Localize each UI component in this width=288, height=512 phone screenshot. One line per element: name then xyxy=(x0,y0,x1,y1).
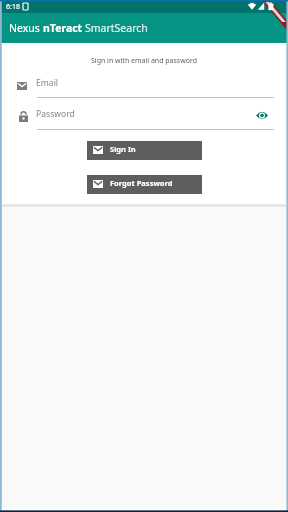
staticText: Email xyxy=(36,77,59,89)
staticText: Password xyxy=(36,108,75,120)
staticText: Sign In xyxy=(110,144,136,154)
button[interactable]: Email xyxy=(2,73,286,99)
button[interactable]: Forgot Password xyxy=(87,175,202,194)
staticText: nTeract xyxy=(43,21,85,35)
button[interactable]: Password xyxy=(2,104,286,132)
button[interactable]: Show password xyxy=(252,106,271,125)
staticText: Sign in with email and password xyxy=(2,56,286,66)
staticText: 6:18 xyxy=(6,2,20,12)
staticText: Forgot Password xyxy=(110,178,173,188)
staticText: Nexus xyxy=(9,21,43,35)
staticText: SmartSearch xyxy=(85,21,148,35)
button[interactable]: Nexus xyxy=(9,21,148,35)
button[interactable]: Sign In xyxy=(87,141,202,160)
